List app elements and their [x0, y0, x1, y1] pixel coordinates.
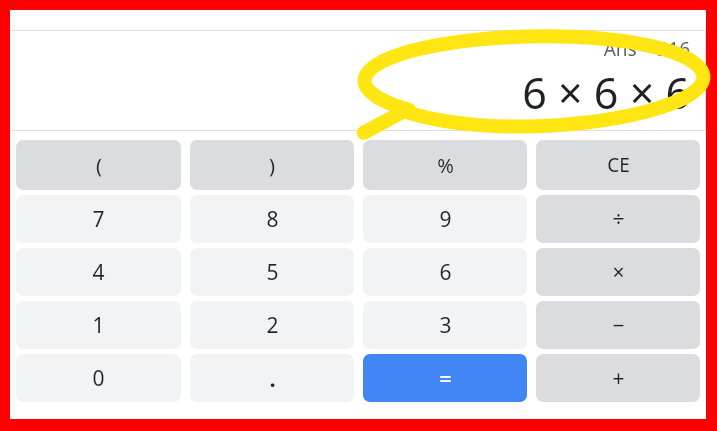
staticText: 5: [266, 258, 279, 287]
button[interactable]: 8: [190, 195, 354, 243]
button[interactable]: %: [363, 140, 527, 190]
button[interactable]: ÷: [536, 195, 700, 243]
staticText: %: [437, 152, 454, 179]
staticText: 6 × 6 × 6: [522, 63, 690, 122]
staticText: Ans = 216: [603, 36, 690, 62]
staticText: ×: [612, 258, 625, 287]
button[interactable]: 4: [16, 248, 181, 296]
button[interactable]: +: [536, 354, 700, 402]
button[interactable]: −: [536, 301, 700, 349]
staticText: =: [439, 363, 452, 393]
button[interactable]: 9: [363, 195, 527, 243]
button[interactable]: 2: [190, 301, 354, 349]
button[interactable]: 7: [16, 195, 181, 243]
button[interactable]: =: [363, 354, 527, 402]
staticText: 4: [92, 258, 105, 287]
button[interactable]: 0: [16, 354, 181, 402]
staticText: 2: [266, 311, 279, 340]
button[interactable]: 6: [363, 248, 527, 296]
button[interactable]: 3: [363, 301, 527, 349]
staticText: CE: [607, 152, 630, 178]
button[interactable]: ×: [536, 248, 700, 296]
button[interactable]: .: [190, 354, 354, 402]
button[interactable]: 1: [16, 301, 181, 349]
staticText: 6: [439, 258, 452, 287]
button[interactable]: (: [16, 140, 181, 190]
staticText: ÷: [612, 205, 625, 234]
button[interactable]: 5: [190, 248, 354, 296]
staticText: 1: [92, 311, 105, 340]
button[interactable]: ): [190, 140, 354, 190]
staticText: +: [612, 364, 625, 393]
staticText: (: [96, 152, 102, 179]
staticText: 7: [92, 205, 105, 234]
staticText: 3: [439, 311, 452, 340]
staticText: 9: [439, 205, 452, 234]
staticText: 0: [92, 364, 105, 393]
button[interactable]: CE: [536, 140, 700, 190]
staticText: 8: [266, 205, 279, 234]
staticText: .: [269, 363, 276, 393]
staticText: ): [269, 152, 275, 179]
staticText: −: [612, 311, 625, 340]
